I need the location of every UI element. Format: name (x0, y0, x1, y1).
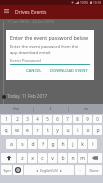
staticText: 3 (26, 116, 29, 122)
button[interactable]: 4 (33, 115, 42, 123)
staticText: 9 (86, 116, 89, 122)
button[interactable]: x (28, 153, 37, 163)
staticText: x (31, 155, 34, 162)
staticText: g (51, 141, 55, 148)
staticText: z (21, 155, 24, 162)
button[interactable]: k (78, 139, 87, 149)
button[interactable]: n (68, 153, 77, 163)
staticText: . (79, 167, 81, 173)
staticText: y (56, 127, 59, 134)
button[interactable]: y (53, 125, 62, 135)
button[interactable]: . (75, 165, 85, 175)
staticText: j (72, 141, 74, 148)
button[interactable]: s (17, 139, 27, 149)
staticText: u (66, 127, 70, 134)
staticText: v (51, 155, 54, 162)
button[interactable]: g (48, 139, 57, 149)
staticText: o (86, 127, 90, 134)
staticText: b (61, 155, 65, 162)
staticText: English(US) (40, 168, 58, 173)
button[interactable]: d (28, 139, 37, 149)
staticText: Sym (3, 168, 11, 173)
staticText: d (31, 141, 35, 148)
button[interactable]: q (1, 125, 11, 135)
button[interactable]: f (38, 139, 47, 149)
staticText: 1 (5, 116, 8, 122)
button[interactable]: v (48, 153, 57, 163)
staticText: Done (89, 168, 99, 173)
button[interactable]: p (93, 125, 102, 135)
staticText: c (41, 155, 44, 162)
staticText: s (21, 141, 24, 148)
button[interactable]: c (38, 153, 47, 163)
button[interactable]: 1 (1, 115, 11, 123)
staticText: Enter the event password below (10, 34, 88, 41)
button[interactable]: Settings (13, 165, 23, 175)
staticText: k (81, 141, 84, 148)
staticText: the (13, 106, 20, 112)
button[interactable]: a (6, 139, 16, 149)
button[interactable]: b (58, 153, 67, 163)
staticText: 4 (36, 116, 39, 122)
button[interactable]: Backspace (88, 153, 102, 163)
staticText: l (92, 141, 94, 148)
button[interactable]: w (12, 125, 22, 135)
staticText: e (26, 127, 29, 134)
staticText: w (15, 127, 19, 134)
staticText: r (36, 127, 39, 134)
staticText: 2 (16, 116, 19, 122)
button[interactable]: I (34, 104, 68, 114)
button[interactable]: Shift (1, 153, 16, 163)
staticText: f (42, 141, 44, 148)
staticText: Event Password (10, 58, 41, 64)
button[interactable]: m (78, 153, 87, 163)
staticText: 0 (96, 116, 99, 122)
button[interactable]: 6 (53, 115, 62, 123)
button[interactable]: 7 (63, 115, 72, 123)
button[interactable]: t (43, 125, 52, 135)
staticText: to (84, 106, 89, 112)
button[interactable]: Open navigation drawer (1, 5, 12, 16)
staticText: 11 Jun 2016 - 24 Jun 2016 (7, 19, 55, 24)
staticText: n (71, 155, 75, 162)
button[interactable]: Sym (1, 165, 12, 175)
button[interactable]: h (58, 139, 67, 149)
staticText: 10:10 (93, 1, 102, 5)
staticText: t (47, 127, 49, 134)
staticText: 100% (80, 1, 89, 5)
button[interactable]: 9 (83, 115, 92, 123)
button[interactable]: u (63, 125, 72, 135)
button[interactable]: 3 (23, 115, 32, 123)
staticText: 8 (76, 116, 79, 122)
button[interactable]: English(US) (24, 165, 74, 175)
staticText: p (96, 127, 100, 134)
button[interactable]: to (69, 104, 103, 114)
button[interactable]: 8 (73, 115, 82, 123)
staticText: 7 (66, 116, 69, 122)
staticText: q (4, 127, 8, 134)
button[interactable]: DOWNLOAD EVENT (47, 66, 91, 75)
staticText: Drives Events (15, 9, 47, 16)
button[interactable]: the (0, 104, 33, 114)
button[interactable]: r (33, 125, 42, 135)
button[interactable]: Done (86, 165, 102, 175)
button[interactable]: 5 (43, 115, 52, 123)
button[interactable]: CANCEL (23, 66, 45, 75)
staticText: m (80, 155, 85, 162)
staticText: CANCEL (26, 68, 42, 74)
staticText: 6 (56, 116, 59, 122)
staticText: a (10, 141, 13, 148)
staticText: i (77, 127, 79, 134)
button[interactable]: 2 (12, 115, 22, 123)
button[interactable]: j (68, 139, 77, 149)
button[interactable]: i (73, 125, 82, 135)
button[interactable]: z (17, 153, 27, 163)
staticText: DOWNLOAD EVENT (50, 68, 88, 74)
staticText: Enter the event password from the app do… (10, 44, 79, 55)
button[interactable]: e (23, 125, 32, 135)
staticText: h (61, 141, 65, 148)
button[interactable]: l (88, 139, 97, 149)
staticText: I (50, 106, 52, 112)
button[interactable]: 0 (93, 115, 102, 123)
button[interactable]: o (83, 125, 92, 135)
